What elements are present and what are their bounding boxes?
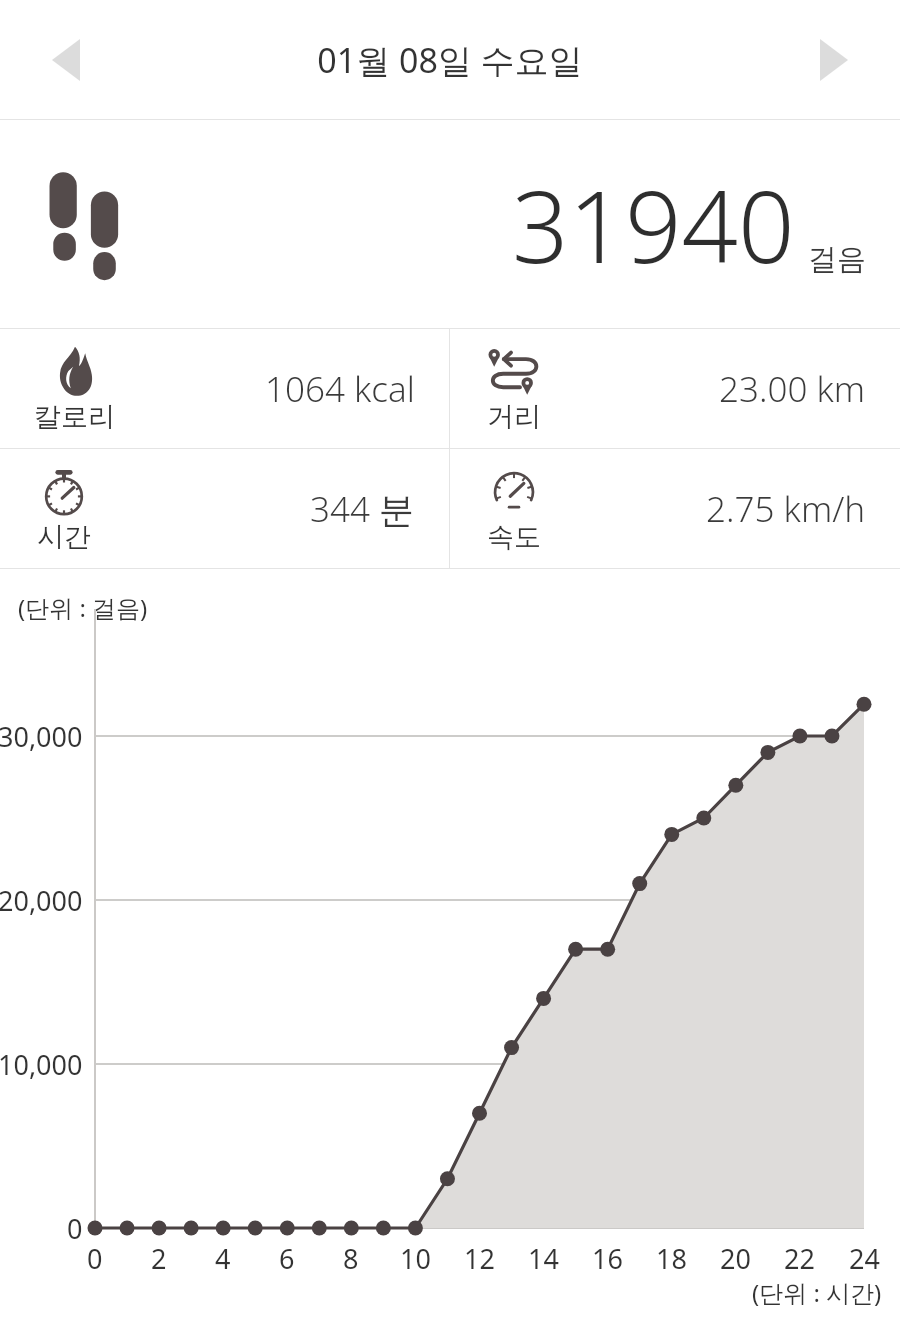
staticText: (단위 : 걸음) — [18, 591, 148, 624]
staticText: 18 — [656, 1240, 687, 1277]
staticText: 10 — [400, 1240, 431, 1277]
staticText: 6 — [279, 1240, 295, 1277]
staticText: (단위 : 시간) — [752, 1276, 882, 1309]
staticText: 칼로리 — [34, 400, 115, 434]
staticText: 시간 — [37, 520, 91, 554]
button[interactable]: 거리 — [450, 329, 900, 448]
staticText: 01월 08일 수요일 — [317, 37, 583, 83]
staticText: 10,000 — [0, 1046, 83, 1083]
staticText: 22 — [784, 1240, 815, 1277]
button[interactable]: 31940 — [0, 120, 900, 328]
staticText: 0 — [87, 1240, 103, 1277]
staticText: 344 분 — [310, 485, 415, 533]
staticText: 거리 — [487, 400, 541, 434]
staticText: 16 — [592, 1240, 623, 1277]
staticText: 20,000 — [0, 882, 83, 919]
staticText: 속도 — [487, 520, 541, 554]
staticText: 2 — [151, 1240, 167, 1277]
staticText: 1064 kcal — [265, 365, 415, 413]
staticText: 4 — [215, 1240, 231, 1277]
staticText: 8 — [343, 1240, 359, 1277]
staticText: 2.75 km/h — [706, 485, 866, 533]
button[interactable]: 속도 — [450, 449, 900, 568]
button[interactable]: 시간 — [0, 449, 449, 568]
staticText: 20 — [720, 1240, 751, 1277]
button[interactable]: 칼로리 — [0, 329, 449, 448]
staticText: 24 — [849, 1240, 880, 1277]
staticText: 12 — [464, 1240, 495, 1277]
button[interactable]: Next day — [794, 20, 874, 100]
staticText: 30,000 — [0, 718, 83, 755]
staticText: 0 — [67, 1210, 83, 1247]
staticText: 31940 — [512, 157, 795, 292]
staticText: 14 — [528, 1240, 559, 1277]
staticText: 걸음 — [808, 241, 866, 278]
staticText: 23.00 km — [719, 365, 866, 413]
button[interactable]: Previous day — [26, 20, 106, 100]
